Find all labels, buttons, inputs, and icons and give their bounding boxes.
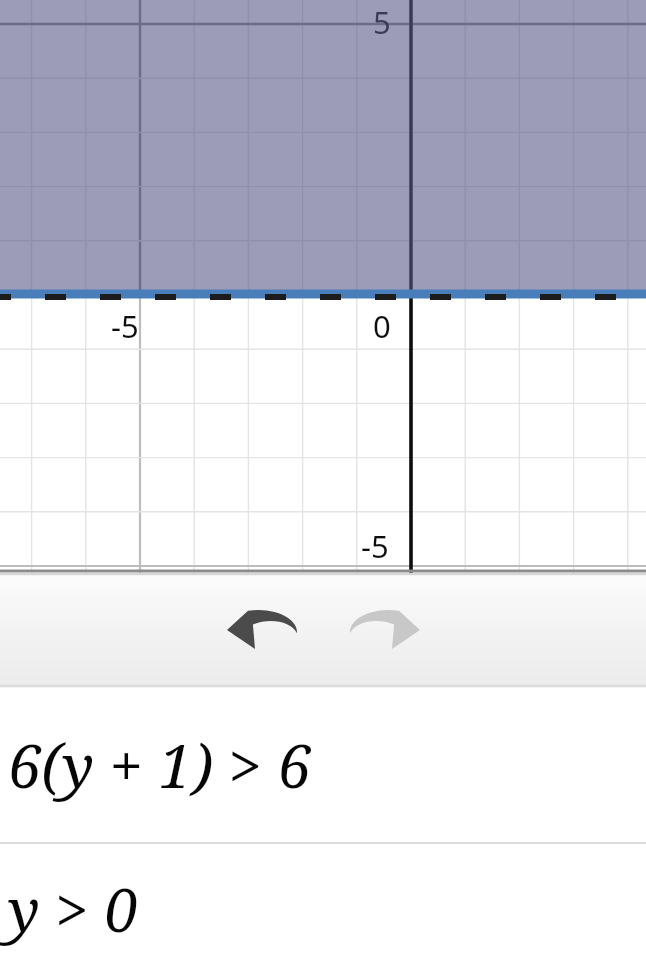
staticText: 0 (373, 305, 391, 347)
staticText: -5 (361, 525, 389, 567)
button[interactable]: Undo (214, 594, 309, 666)
button[interactable]: 6(y + 1) > 6 (0, 687, 646, 842)
staticText: 6(y + 1) > 6 (8, 724, 312, 806)
button[interactable]: Redo (337, 594, 432, 666)
staticText: -5 (111, 305, 139, 347)
staticText: y > 0 (8, 868, 138, 950)
button[interactable]: y > 0 (0, 844, 646, 973)
staticText: 5 (373, 1, 391, 43)
